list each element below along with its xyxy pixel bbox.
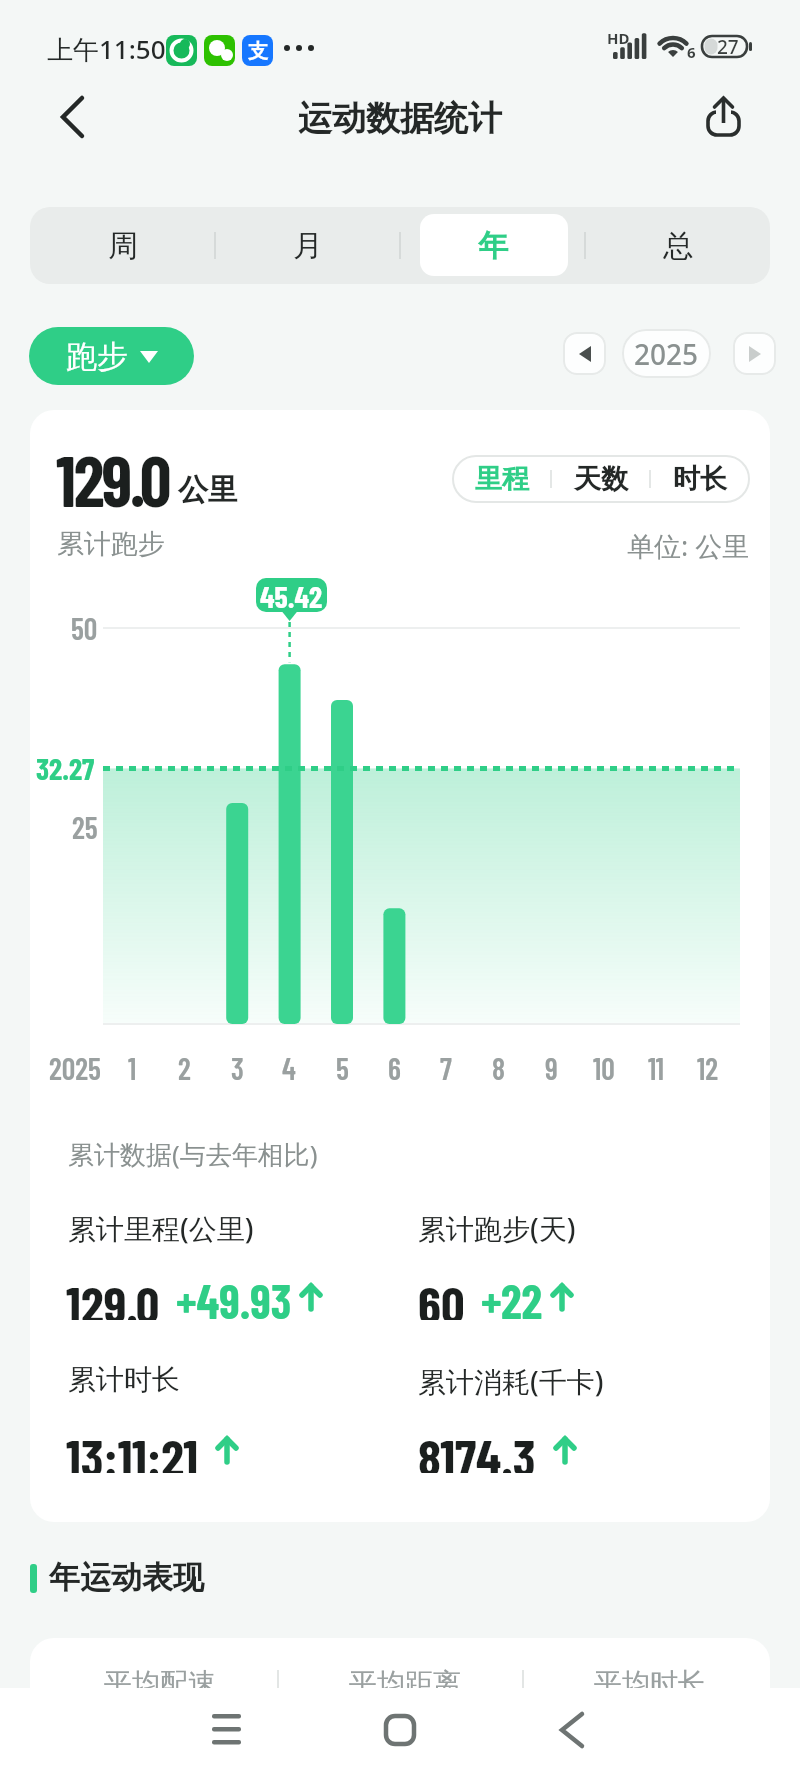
- staticText: 平均配速: [104, 1666, 216, 1700]
- staticText: 3: [231, 1050, 244, 1084]
- staticText: 里程: [475, 462, 529, 496]
- staticText: 10: [593, 1050, 615, 1084]
- staticText: 4: [282, 1050, 296, 1084]
- staticText: 上午11:50: [47, 31, 166, 67]
- staticText: 7: [440, 1050, 452, 1084]
- staticText: 累计消耗(千卡): [418, 1362, 604, 1400]
- staticText: 32.27: [36, 750, 95, 784]
- staticText: 13:11:21: [66, 1425, 198, 1473]
- staticText: 129.0: [56, 437, 170, 521]
- staticText: 8: [492, 1050, 506, 1084]
- staticText: +22: [481, 1272, 543, 1320]
- button[interactable]: [542, 1700, 602, 1760]
- staticText: 支: [248, 39, 268, 64]
- staticText: 60: [418, 1272, 465, 1320]
- staticText: 跑步: [66, 337, 128, 376]
- staticText: 累计跑步: [57, 527, 165, 561]
- button[interactable]: [370, 1700, 430, 1760]
- staticText: 平均时长: [594, 1666, 706, 1700]
- staticText: 年: [478, 227, 508, 265]
- button[interactable]: 2025: [622, 329, 711, 378]
- button[interactable]: [700, 92, 748, 142]
- staticText: HD: [607, 28, 630, 48]
- button[interactable]: 月: [215, 207, 400, 284]
- staticText: 累计跑步(天): [418, 1209, 576, 1247]
- button[interactable]: 周: [30, 207, 215, 284]
- button[interactable]: 里程: [452, 455, 552, 503]
- staticText: 6: [687, 42, 696, 60]
- staticText: 运动数据统计: [298, 97, 502, 140]
- staticText: 2025: [49, 1050, 101, 1084]
- staticText: 总: [663, 227, 693, 265]
- staticText: 6: [388, 1050, 401, 1084]
- staticText: 年运动表现: [49, 1558, 204, 1597]
- staticText: 2025: [634, 335, 699, 373]
- staticText: 2: [178, 1050, 191, 1084]
- staticText: 公里: [178, 471, 238, 509]
- staticText: 月: [293, 227, 323, 265]
- staticText: 周: [108, 227, 138, 265]
- button[interactable]: [40, 95, 86, 141]
- staticText: 25: [72, 809, 98, 843]
- staticText: 单位: 公里: [627, 527, 750, 561]
- button[interactable]: 总: [585, 207, 770, 284]
- staticText: 平均距离: [349, 1666, 461, 1700]
- button[interactable]: [563, 332, 606, 375]
- staticText: 累计数据(与去年相比): [68, 1136, 318, 1172]
- staticText: 1: [128, 1050, 137, 1084]
- button[interactable]: [733, 332, 776, 375]
- staticText: +49.93: [176, 1272, 292, 1320]
- staticText: 11: [648, 1050, 665, 1084]
- button[interactable]: 年: [400, 207, 585, 284]
- button[interactable]: 天数: [551, 455, 651, 503]
- staticText: 50: [71, 610, 98, 644]
- staticText: 时长: [673, 462, 727, 496]
- staticText: 累计时长: [68, 1362, 180, 1397]
- button[interactable]: [196, 1700, 256, 1760]
- staticText: 累计里程(公里): [68, 1209, 254, 1247]
- staticText: 27: [717, 34, 739, 58]
- staticText: 12: [697, 1050, 719, 1084]
- staticText: 5: [336, 1050, 349, 1084]
- staticText: 45.42: [260, 578, 323, 612]
- staticText: 129.0: [66, 1272, 160, 1320]
- button[interactable]: 时长: [650, 455, 750, 503]
- button[interactable]: 跑步: [29, 327, 194, 385]
- staticText: 8174.3: [418, 1425, 536, 1473]
- staticText: 天数: [574, 462, 628, 496]
- staticText: 9: [545, 1050, 558, 1084]
